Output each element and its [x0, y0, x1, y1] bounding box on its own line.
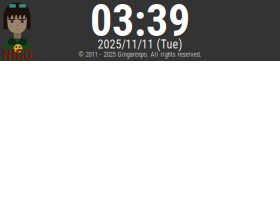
staticText: NICO [3, 46, 33, 64]
staticText: 2025/11/11 (Tue) [97, 37, 182, 52]
staticText: © 2011 - 2025 Gingarenpo. All rights res… [78, 51, 201, 58]
staticText: 03:39 [90, 0, 190, 47]
